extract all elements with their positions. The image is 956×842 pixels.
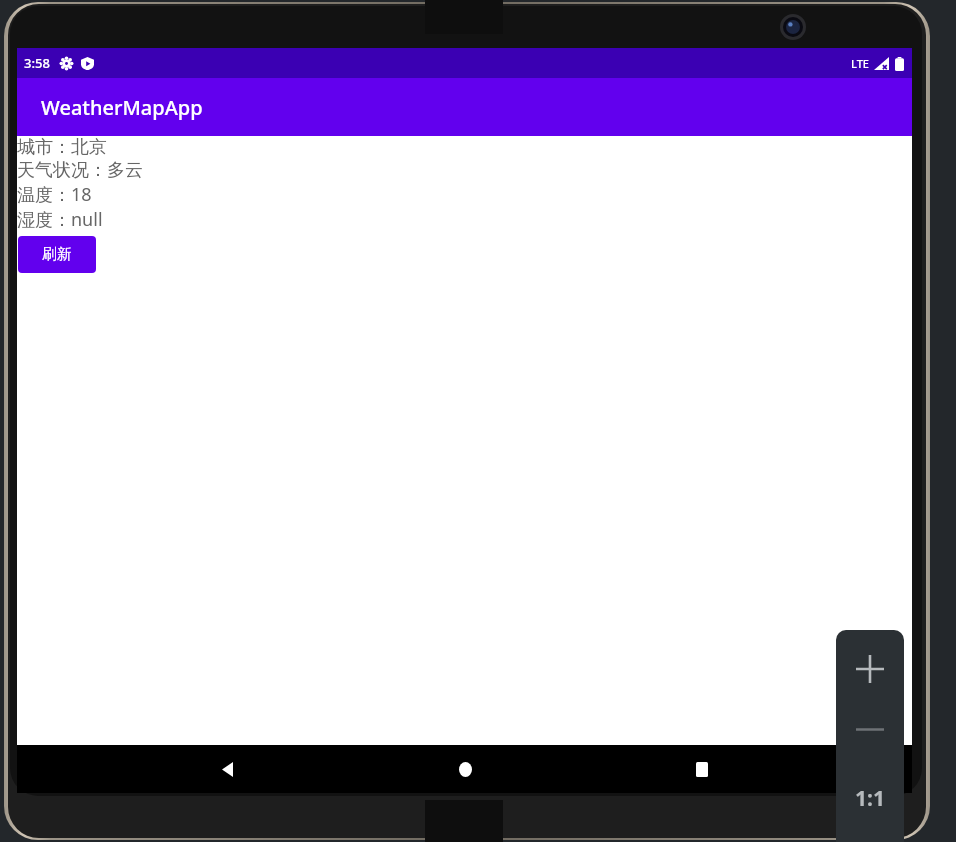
staticText: 天气状况：多云 (17, 159, 143, 182)
button[interactable]: Zoom out (847, 706, 893, 752)
button[interactable]: Recent apps (674, 745, 730, 793)
staticText: 1:1 (855, 784, 885, 813)
staticText: 温度：18 (17, 182, 92, 207)
staticText: 湿度：null (17, 207, 103, 232)
button[interactable]: 刷新 (18, 236, 96, 273)
button[interactable]: 1:1 (844, 778, 896, 818)
staticText: 刷新 (42, 245, 72, 264)
button[interactable]: Zoom in (847, 646, 893, 692)
staticText: 3:58 (24, 54, 50, 72)
staticText: LTE (851, 56, 869, 71)
button[interactable]: Home (437, 745, 493, 793)
staticText: WeatherMapApp (41, 94, 203, 121)
staticText: 城市：北京 (17, 136, 107, 159)
button[interactable]: Back (199, 745, 255, 793)
